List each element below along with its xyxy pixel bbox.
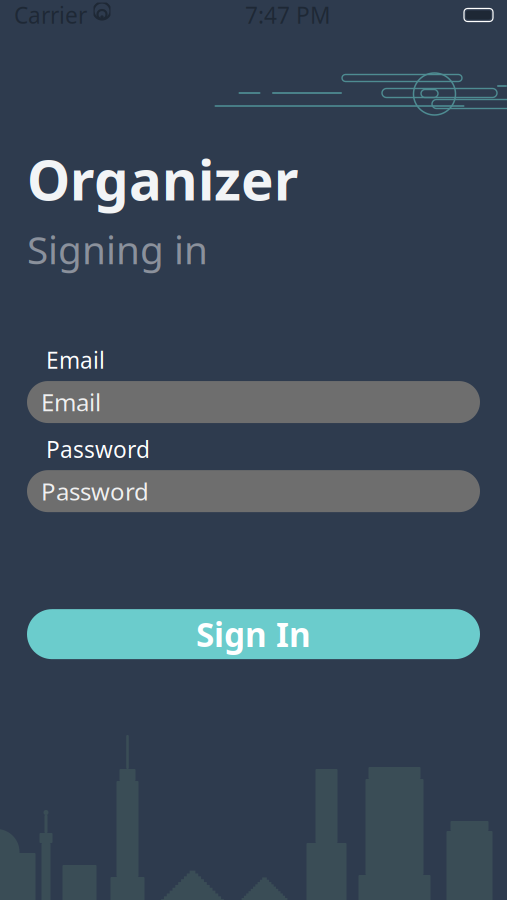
staticText: Sign In <box>196 612 311 656</box>
staticText: Email <box>41 386 101 418</box>
button[interactable]: Password <box>27 470 480 512</box>
staticText: Organizer <box>27 143 298 216</box>
staticText: Email <box>46 345 105 375</box>
staticText: Signing in <box>27 224 208 275</box>
staticText: Password <box>41 475 149 507</box>
button[interactable]: Sign In <box>27 609 480 659</box>
button[interactable]: Email <box>27 381 480 423</box>
staticText: Password <box>46 434 150 464</box>
staticText: 7:47 PM <box>245 0 331 30</box>
staticText: Carrier <box>14 0 87 30</box>
